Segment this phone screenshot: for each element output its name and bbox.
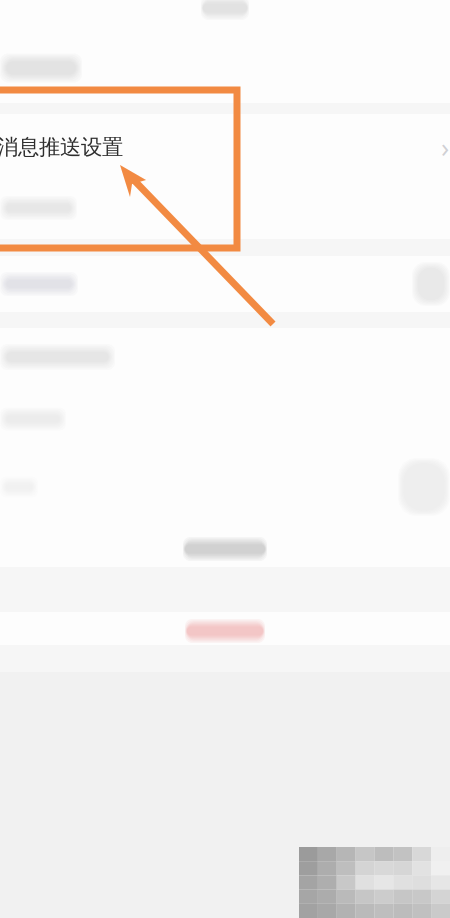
button[interactable]: 消息推送设置 — [0, 114, 450, 239]
staticText: › — [441, 129, 449, 165]
button[interactable]: Settings item — [0, 256, 450, 312]
button[interactable]: Settings item — [0, 177, 450, 239]
button[interactable]: Settings item — [0, 461, 450, 513]
button[interactable]: Settings item — [0, 328, 450, 386]
button[interactable]: Settings — [165, 0, 285, 28]
button[interactable]: Switch account — [0, 527, 450, 571]
button[interactable]: Settings item — [0, 38, 450, 98]
staticText: 消息推送设置 — [0, 134, 123, 160]
button[interactable]: Log out — [0, 608, 450, 654]
